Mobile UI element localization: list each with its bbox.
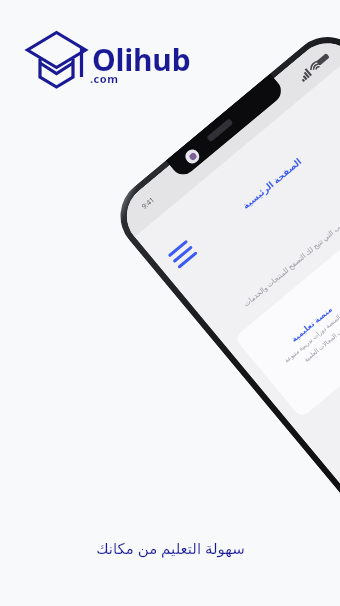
button[interactable]	[168, 240, 198, 269]
staticText: .com	[90, 71, 119, 86]
staticText: سهولة التعليم من مكانك	[96, 538, 245, 558]
button[interactable]	[234, 170, 340, 418]
staticText: 9:41	[140, 195, 157, 212]
staticText: أهلاً بك في منصة أوليهب التي تتيح لك الت…	[242, 182, 340, 309]
staticText: تقدم المنصة دورات تدريبية متنوعة في مختل…	[283, 305, 340, 381]
staticText: الصفحة الرئيسية	[239, 155, 304, 211]
staticText: Olihub	[92, 39, 191, 80]
staticText: منصة تعليمية	[288, 303, 334, 344]
